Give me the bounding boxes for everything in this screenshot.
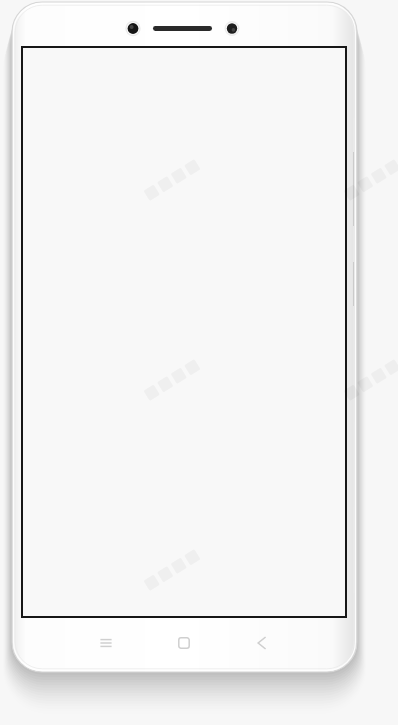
button[interactable]: Home	[162, 621, 206, 665]
button[interactable]: Back	[240, 621, 284, 665]
button[interactable]: Recent apps	[84, 621, 128, 665]
